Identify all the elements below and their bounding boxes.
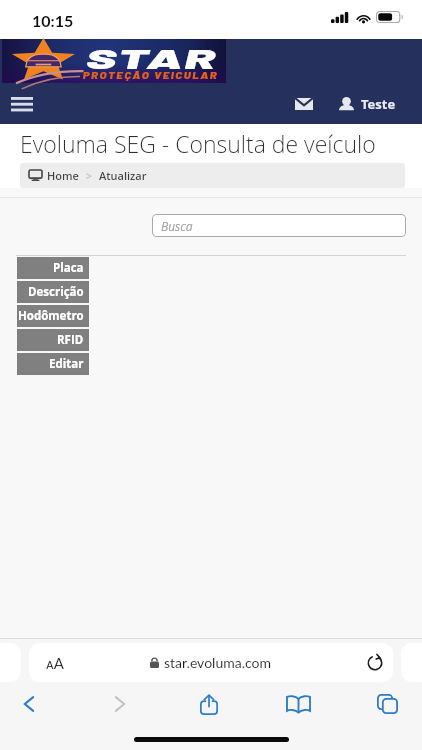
- staticText: star.evoluma.com: [164, 654, 271, 671]
- staticText: Teste: [361, 95, 396, 113]
- button[interactable]: Hodômetro: [17, 305, 89, 327]
- staticText: Hodômetro: [18, 308, 84, 324]
- staticText: Busca: [161, 218, 193, 234]
- button[interactable]: Reload: [357, 645, 393, 681]
- button[interactable]: Placa: [17, 257, 89, 279]
- button[interactable]: Busca: [152, 214, 406, 237]
- button[interactable]: Menu: [6, 89, 38, 119]
- staticText: ᴀA: [46, 654, 64, 672]
- staticText: Placa: [53, 260, 84, 276]
- button[interactable]: Bookmarks: [269, 686, 327, 722]
- button[interactable]: Back: [0, 686, 58, 722]
- staticText: Evoluma SEG - Consulta de veículo: [20, 128, 376, 159]
- staticText: PROTEÇÃO VEICULAR: [83, 70, 219, 81]
- button[interactable]: RFID: [17, 329, 89, 351]
- staticText: >: [86, 169, 92, 183]
- button[interactable]: Teste: [339, 95, 396, 113]
- staticText: 10:15: [32, 11, 74, 30]
- button[interactable]: Editar: [17, 353, 89, 375]
- staticText: STAR: [86, 42, 218, 74]
- staticText: Editar: [49, 356, 84, 372]
- staticText: RFID: [57, 332, 84, 348]
- button[interactable]: Descrição: [17, 281, 89, 303]
- button[interactable]: ᴀA: [29, 643, 393, 682]
- button[interactable]: Forward: [91, 686, 149, 722]
- staticText: Home: [47, 168, 79, 183]
- button[interactable]: Messages: [286, 89, 322, 119]
- staticText: Descrição: [28, 284, 84, 300]
- button[interactable]: Share: [180, 686, 238, 722]
- button[interactable]: Tabs: [358, 686, 416, 722]
- staticText: Atualizar: [99, 168, 147, 183]
